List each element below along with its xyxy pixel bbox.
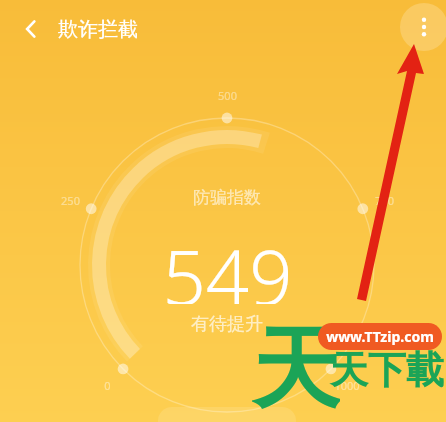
staticText: 750 bbox=[375, 193, 394, 208]
staticText: 0 bbox=[104, 378, 111, 393]
staticText: www.TTzip.com bbox=[326, 327, 434, 346]
staticText: 549 bbox=[162, 224, 293, 304]
staticText: 天 bbox=[252, 314, 340, 410]
staticText: 欺诈拦截 bbox=[58, 17, 138, 42]
staticText: 250 bbox=[61, 193, 80, 208]
button[interactable]: Back bbox=[8, 6, 54, 52]
staticText: 天下載 bbox=[330, 346, 444, 394]
button[interactable] bbox=[158, 407, 296, 422]
staticText: 防骗指数 bbox=[193, 187, 261, 208]
staticText: 有待提升 bbox=[191, 313, 263, 336]
staticText: 500 bbox=[218, 88, 237, 103]
staticText: 1000 bbox=[334, 378, 360, 393]
button[interactable]: More options bbox=[400, 3, 446, 51]
